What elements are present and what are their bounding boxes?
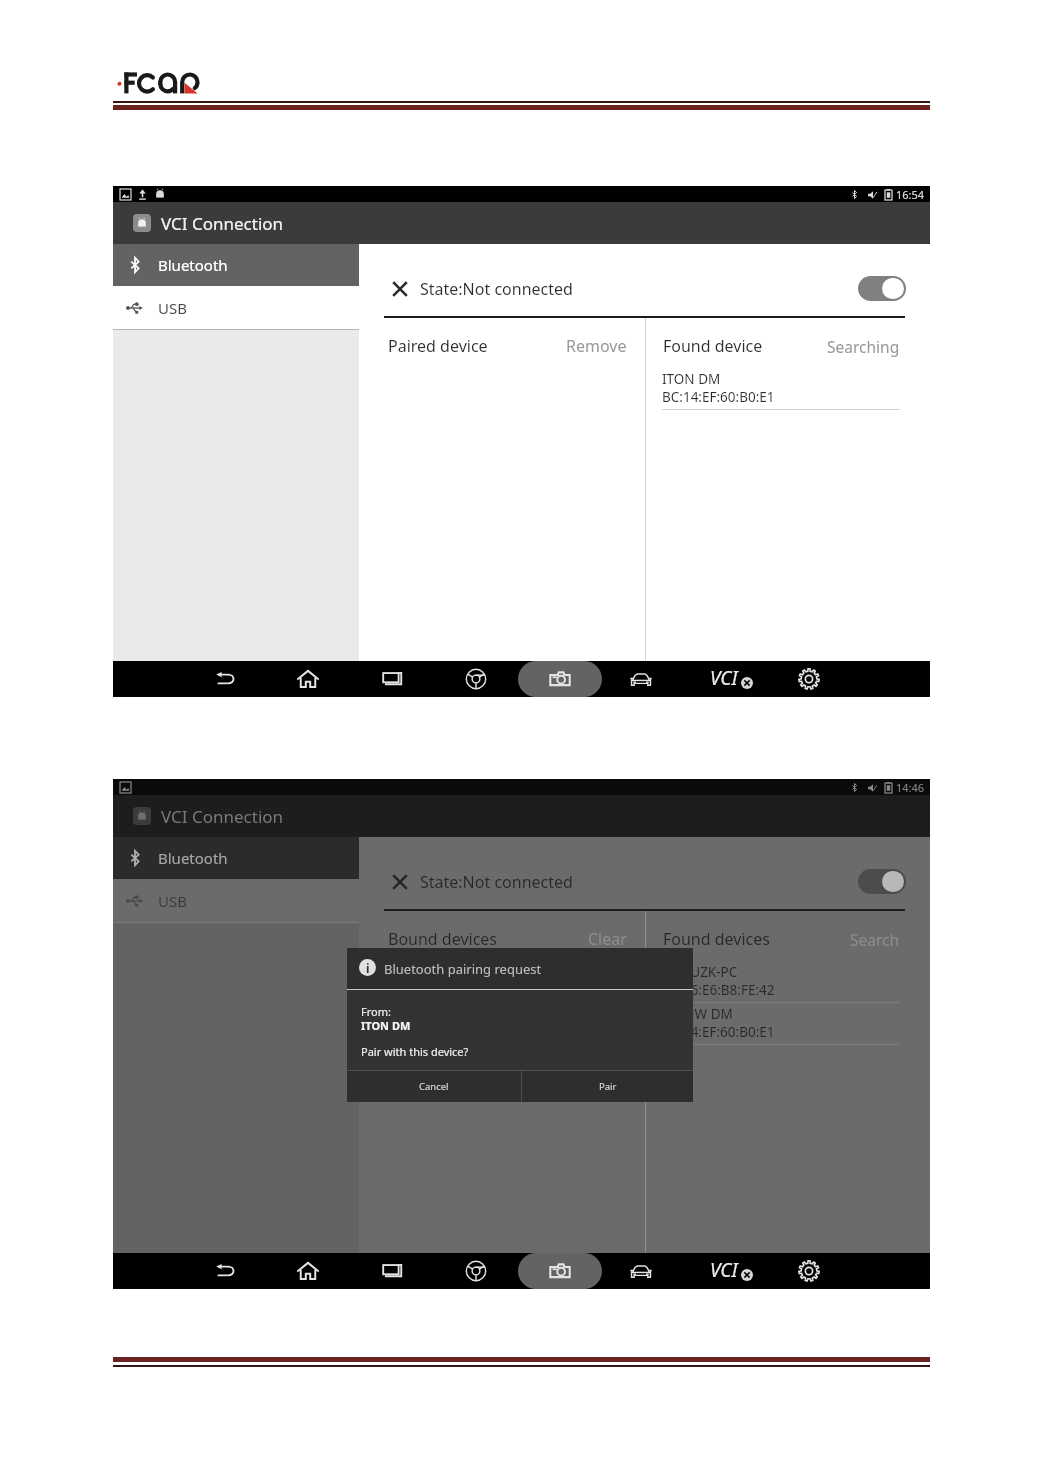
button[interactable]: VCI bbox=[705, 661, 763, 697]
staticText: Searching bbox=[827, 336, 900, 357]
staticText: USB bbox=[158, 891, 187, 911]
staticText: Bluetooth bbox=[158, 848, 228, 868]
staticText: From: bbox=[361, 1004, 391, 1019]
staticText: ITON DM bbox=[662, 370, 721, 388]
staticText: VCI bbox=[710, 1257, 738, 1283]
button[interactable]: ZHOUZK-PC bbox=[662, 963, 900, 1005]
staticText: ZHOUZK-PC bbox=[662, 963, 738, 981]
button[interactable]: VCI bbox=[705, 1253, 763, 1289]
button[interactable]: Home bbox=[291, 1253, 325, 1289]
button[interactable]: Cancel bbox=[347, 1071, 521, 1102]
button[interactable]: ITON DM bbox=[662, 370, 900, 412]
staticText: Clear bbox=[588, 928, 627, 950]
button[interactable]: Settings bbox=[792, 661, 826, 697]
button[interactable]: Vehicle bbox=[624, 1253, 658, 1289]
button[interactable]: USB bbox=[113, 286, 359, 329]
staticText: State:Not connected bbox=[420, 278, 573, 300]
button[interactable]: Searching bbox=[799, 335, 900, 357]
button[interactable]: Remove bbox=[539, 335, 627, 357]
staticText: USB bbox=[158, 298, 187, 318]
button[interactable]: Search bbox=[799, 928, 900, 950]
staticText: BC:14:EF:60:B0:E1 bbox=[662, 1023, 775, 1041]
staticText: BC:14:EF:60:B0:E1 bbox=[662, 388, 775, 406]
staticText: VCI bbox=[710, 665, 738, 691]
staticText: Found devices bbox=[663, 928, 770, 950]
staticText: VCI Connection bbox=[161, 805, 284, 828]
button[interactable]: Recents bbox=[375, 661, 409, 697]
button[interactable]: Bluetooth bbox=[113, 244, 359, 286]
staticText: Search bbox=[850, 929, 900, 950]
staticText: Found device bbox=[663, 335, 763, 357]
staticText: 16:54 bbox=[896, 187, 925, 202]
button[interactable]: Screenshot bbox=[543, 661, 577, 697]
button[interactable]: USB bbox=[113, 879, 359, 922]
staticText: i bbox=[366, 960, 370, 976]
button[interactable]: Home bbox=[291, 661, 325, 697]
button[interactable]: Disconnected bbox=[392, 281, 408, 297]
button[interactable]: Bluetooth toggle bbox=[858, 869, 906, 894]
button[interactable]: Disconnected bbox=[392, 874, 408, 890]
button[interactable]: Clear bbox=[539, 928, 627, 950]
button[interactable]: Browser bbox=[459, 1253, 493, 1289]
button[interactable]: App icon bbox=[133, 214, 151, 232]
button[interactable]: Settings bbox=[792, 1253, 826, 1289]
staticText: Bluetooth bbox=[158, 255, 228, 275]
button[interactable]: Vehicle bbox=[624, 661, 658, 697]
staticText: Paired device bbox=[388, 335, 488, 357]
staticText: 14:46 bbox=[896, 780, 925, 795]
staticText: Pair with this device? bbox=[361, 1044, 469, 1059]
staticText: VCI Connection bbox=[161, 212, 284, 235]
button[interactable]: Recents bbox=[375, 1253, 409, 1289]
button[interactable]: Browser bbox=[459, 661, 493, 697]
staticText: Bound devices bbox=[388, 928, 498, 950]
staticText: Bluetooth pairing request bbox=[384, 960, 542, 978]
staticText: Remove bbox=[566, 335, 627, 357]
staticText: Cancel bbox=[419, 1080, 449, 1093]
button[interactable]: Screenshot bbox=[543, 1253, 577, 1289]
staticText: State:Not connected bbox=[420, 871, 573, 893]
button[interactable]: ITONW DM bbox=[662, 1005, 900, 1047]
staticText: 9C:B6:E6:B8:FE:42 bbox=[662, 981, 775, 999]
button[interactable]: App icon bbox=[133, 807, 151, 825]
staticText: Pair bbox=[599, 1080, 617, 1093]
button[interactable]: Pair bbox=[522, 1071, 693, 1102]
button[interactable]: Back bbox=[209, 661, 243, 697]
staticText: ITON DM bbox=[361, 1018, 411, 1033]
button[interactable]: Bluetooth toggle bbox=[858, 276, 906, 301]
button[interactable]: Back bbox=[209, 1253, 243, 1289]
button[interactable]: Bluetooth bbox=[113, 837, 359, 879]
staticText: ITONW DM bbox=[662, 1005, 733, 1023]
